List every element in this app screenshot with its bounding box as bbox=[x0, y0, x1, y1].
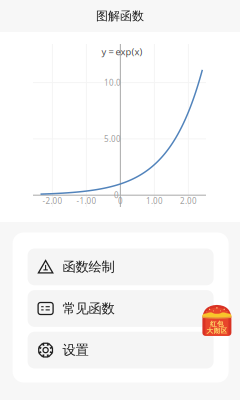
staticText: 红包 bbox=[210, 320, 224, 328]
staticText: 10.0 bbox=[104, 77, 121, 88]
staticText: 1.00 bbox=[146, 195, 163, 206]
staticText: 0 bbox=[114, 190, 119, 200]
staticText: 2.00 bbox=[180, 195, 197, 206]
staticText: 常见函数 bbox=[63, 300, 115, 317]
staticText: -2.00 bbox=[42, 195, 62, 206]
button[interactable]: 红包大闹区活动 bbox=[202, 305, 231, 336]
staticText: -1.00 bbox=[76, 195, 96, 206]
staticText: 函数绘制 bbox=[63, 259, 115, 275]
staticText: 0 bbox=[118, 195, 123, 206]
staticText: y = exp(x) bbox=[101, 45, 142, 58]
button[interactable]: 函数绘制 bbox=[28, 248, 214, 285]
staticText: 设置 bbox=[63, 342, 89, 358]
button[interactable]: 常见函数 bbox=[28, 290, 214, 327]
staticText: 图解函数 bbox=[96, 9, 144, 23]
button[interactable]: 设置 bbox=[28, 332, 214, 368]
staticText: 5.00 bbox=[104, 134, 121, 144]
staticText: 大闹区 bbox=[206, 327, 227, 335]
